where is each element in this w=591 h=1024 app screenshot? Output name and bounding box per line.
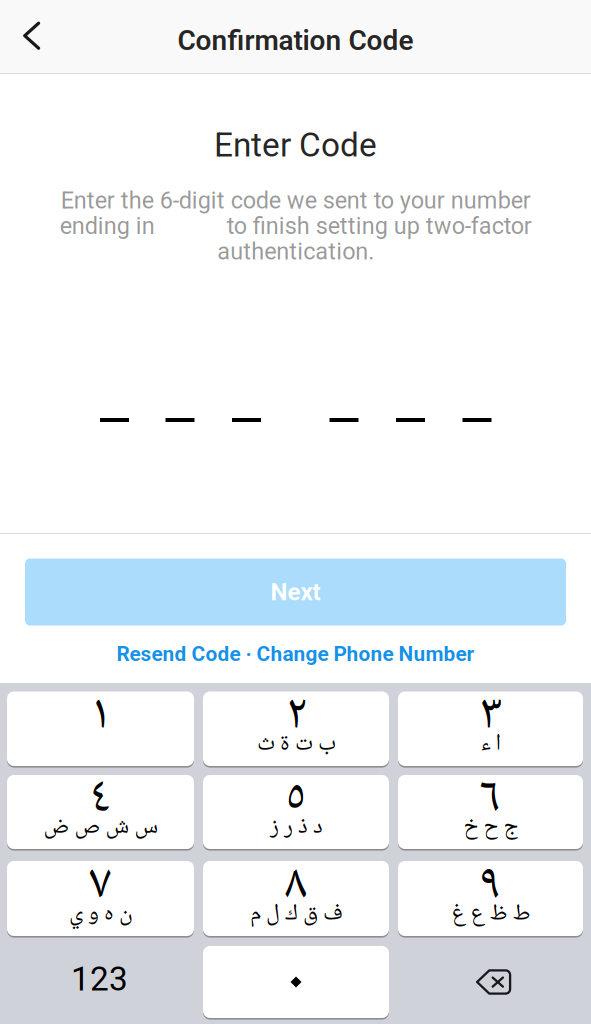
staticText: ١ xyxy=(92,682,108,749)
staticText: Enter the 6-digit code we sent to your n… xyxy=(59,187,531,265)
staticText: ج ح خ xyxy=(463,811,518,843)
button[interactable]: Resend Code xyxy=(116,642,240,666)
staticText: ن ه و ي xyxy=(68,898,132,929)
staticText: Next xyxy=(270,578,320,606)
staticText: Confirmation Code xyxy=(177,24,413,57)
button[interactable]: Back xyxy=(3,7,61,65)
staticText: ٧ xyxy=(89,851,111,918)
button[interactable]: ٥ xyxy=(203,775,389,849)
staticText: ب ت ة ث xyxy=(256,728,335,760)
button[interactable]: ١ xyxy=(7,691,194,766)
staticText: ٦ xyxy=(479,765,501,832)
button[interactable]: Delete xyxy=(398,946,583,1018)
staticText: Resend Code xyxy=(116,642,240,666)
staticText: ٢ xyxy=(286,682,306,749)
button[interactable]: Change Phone Number xyxy=(256,642,474,666)
staticText: ٤ xyxy=(90,765,111,832)
button[interactable]: ٢ xyxy=(203,691,389,766)
button[interactable]: ٩ xyxy=(398,861,583,936)
staticText: ٣ xyxy=(478,682,502,749)
button[interactable]: ٧ xyxy=(7,861,194,936)
button[interactable]: Next xyxy=(25,558,566,625)
button[interactable]: 123 xyxy=(7,946,194,1018)
staticText: Change Phone Number xyxy=(256,642,474,666)
staticText: ٥ xyxy=(286,765,305,832)
staticText: ٨ xyxy=(285,851,307,918)
staticText: 123 xyxy=(71,959,128,999)
staticText: · xyxy=(240,642,256,666)
button[interactable] xyxy=(203,946,389,1018)
staticText: د ذ ر ز xyxy=(269,811,322,843)
staticText: س ش ص ض xyxy=(43,811,158,843)
button[interactable]: ٦ xyxy=(398,775,583,849)
button[interactable]: ٨ xyxy=(203,861,389,936)
staticText: ا ء xyxy=(480,728,501,760)
staticText: ط ظ ع غ xyxy=(451,898,530,929)
staticText: Enter Code xyxy=(214,125,377,165)
button[interactable]: ٣ xyxy=(398,691,583,766)
button[interactable]: ٤ xyxy=(7,775,194,849)
staticText: ٩ xyxy=(480,851,501,918)
staticText: ف ق ك ل م xyxy=(249,898,342,929)
